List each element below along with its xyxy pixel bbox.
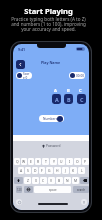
button[interactable]: B (64, 94, 73, 104)
staticText: I (69, 159, 71, 164)
button[interactable]: Y (50, 158, 57, 165)
staticText: P (84, 159, 87, 164)
staticText: B (67, 88, 70, 94)
button[interactable]: T (42, 158, 49, 165)
staticText: Score 0 (23, 72, 31, 79)
staticText: A (54, 88, 57, 94)
button[interactable]: 00:00 (69, 72, 85, 79)
staticText: O (76, 159, 79, 164)
button[interactable]: Score 0 (16, 72, 32, 79)
staticText: Numbers (43, 117, 58, 121)
staticText: T (45, 159, 47, 164)
button[interactable]: Z (24, 177, 31, 184)
button[interactable]: Back (16, 60, 25, 69)
staticText: Z (27, 178, 29, 183)
button[interactable]: B (56, 177, 63, 184)
staticText: B (67, 96, 71, 103)
staticText: S (27, 168, 29, 173)
button[interactable]: U (58, 158, 65, 165)
button[interactable]: space (34, 186, 71, 193)
staticText: Practice typing both letters (A to Z) an… (11, 16, 86, 32)
staticText: Q (16, 159, 19, 164)
staticText: G (48, 168, 51, 173)
button[interactable] (24, 186, 33, 193)
staticText: F (41, 168, 43, 173)
button[interactable]: C (40, 177, 47, 184)
staticText: 00:00 (76, 74, 84, 78)
button[interactable]: C (77, 94, 86, 104)
button[interactable]: R (35, 158, 41, 165)
button[interactable]: W (21, 158, 27, 165)
button[interactable]: M (72, 177, 79, 184)
button[interactable]: V (48, 177, 55, 184)
staticText: 9:41 (18, 47, 26, 52)
staticText: A (20, 168, 23, 173)
button[interactable]: Numbers (39, 115, 64, 122)
staticText: L (81, 168, 83, 173)
button[interactable]: D (32, 167, 38, 174)
staticText: K (72, 168, 75, 173)
staticText: Password (46, 144, 61, 148)
staticText: E (30, 159, 32, 164)
staticText: space (49, 188, 57, 192)
staticText: J (65, 168, 66, 173)
staticText: V (50, 178, 53, 183)
staticText: H (56, 168, 59, 173)
staticText: D (34, 168, 37, 173)
button[interactable]: P (82, 158, 89, 165)
button[interactable]: Q (14, 158, 20, 165)
staticText: C (79, 88, 82, 94)
button[interactable]: Dictation (81, 199, 87, 205)
button[interactable]: I (66, 158, 73, 165)
button[interactable]: Backspace (80, 177, 89, 184)
button[interactable]: G (46, 167, 53, 174)
button[interactable]: K (70, 167, 77, 174)
button[interactable]: Shift (14, 177, 23, 184)
staticText: W (22, 159, 26, 164)
button[interactable]: H (54, 167, 61, 174)
staticText: A (55, 96, 59, 103)
button[interactable]: J (62, 167, 69, 174)
staticText: C (80, 96, 84, 103)
button[interactable]: L (78, 167, 85, 174)
button[interactable]: E (28, 158, 34, 165)
staticText: C (42, 178, 45, 183)
staticText: U (60, 159, 63, 164)
staticText: M (74, 178, 78, 183)
staticText: B (58, 178, 61, 183)
staticText: search (77, 188, 86, 192)
button[interactable]: A (18, 167, 24, 174)
button[interactable]: X (32, 177, 39, 184)
button[interactable]: F (39, 167, 45, 174)
staticText: N (66, 178, 69, 183)
staticText: Y (53, 159, 55, 164)
button[interactable]: N (64, 177, 71, 184)
staticText: R (37, 159, 40, 164)
button[interactable]: A (52, 94, 61, 104)
staticText: 123 (17, 188, 22, 192)
button[interactable]: O (74, 158, 81, 165)
button[interactable]: 123 (16, 186, 22, 193)
button[interactable]: S (25, 167, 31, 174)
button[interactable]: Emoji (16, 199, 22, 205)
staticText: Start Playing (24, 6, 73, 16)
staticText: X (35, 178, 37, 183)
button[interactable]: search (73, 186, 89, 193)
staticText: Play Name (41, 60, 61, 65)
